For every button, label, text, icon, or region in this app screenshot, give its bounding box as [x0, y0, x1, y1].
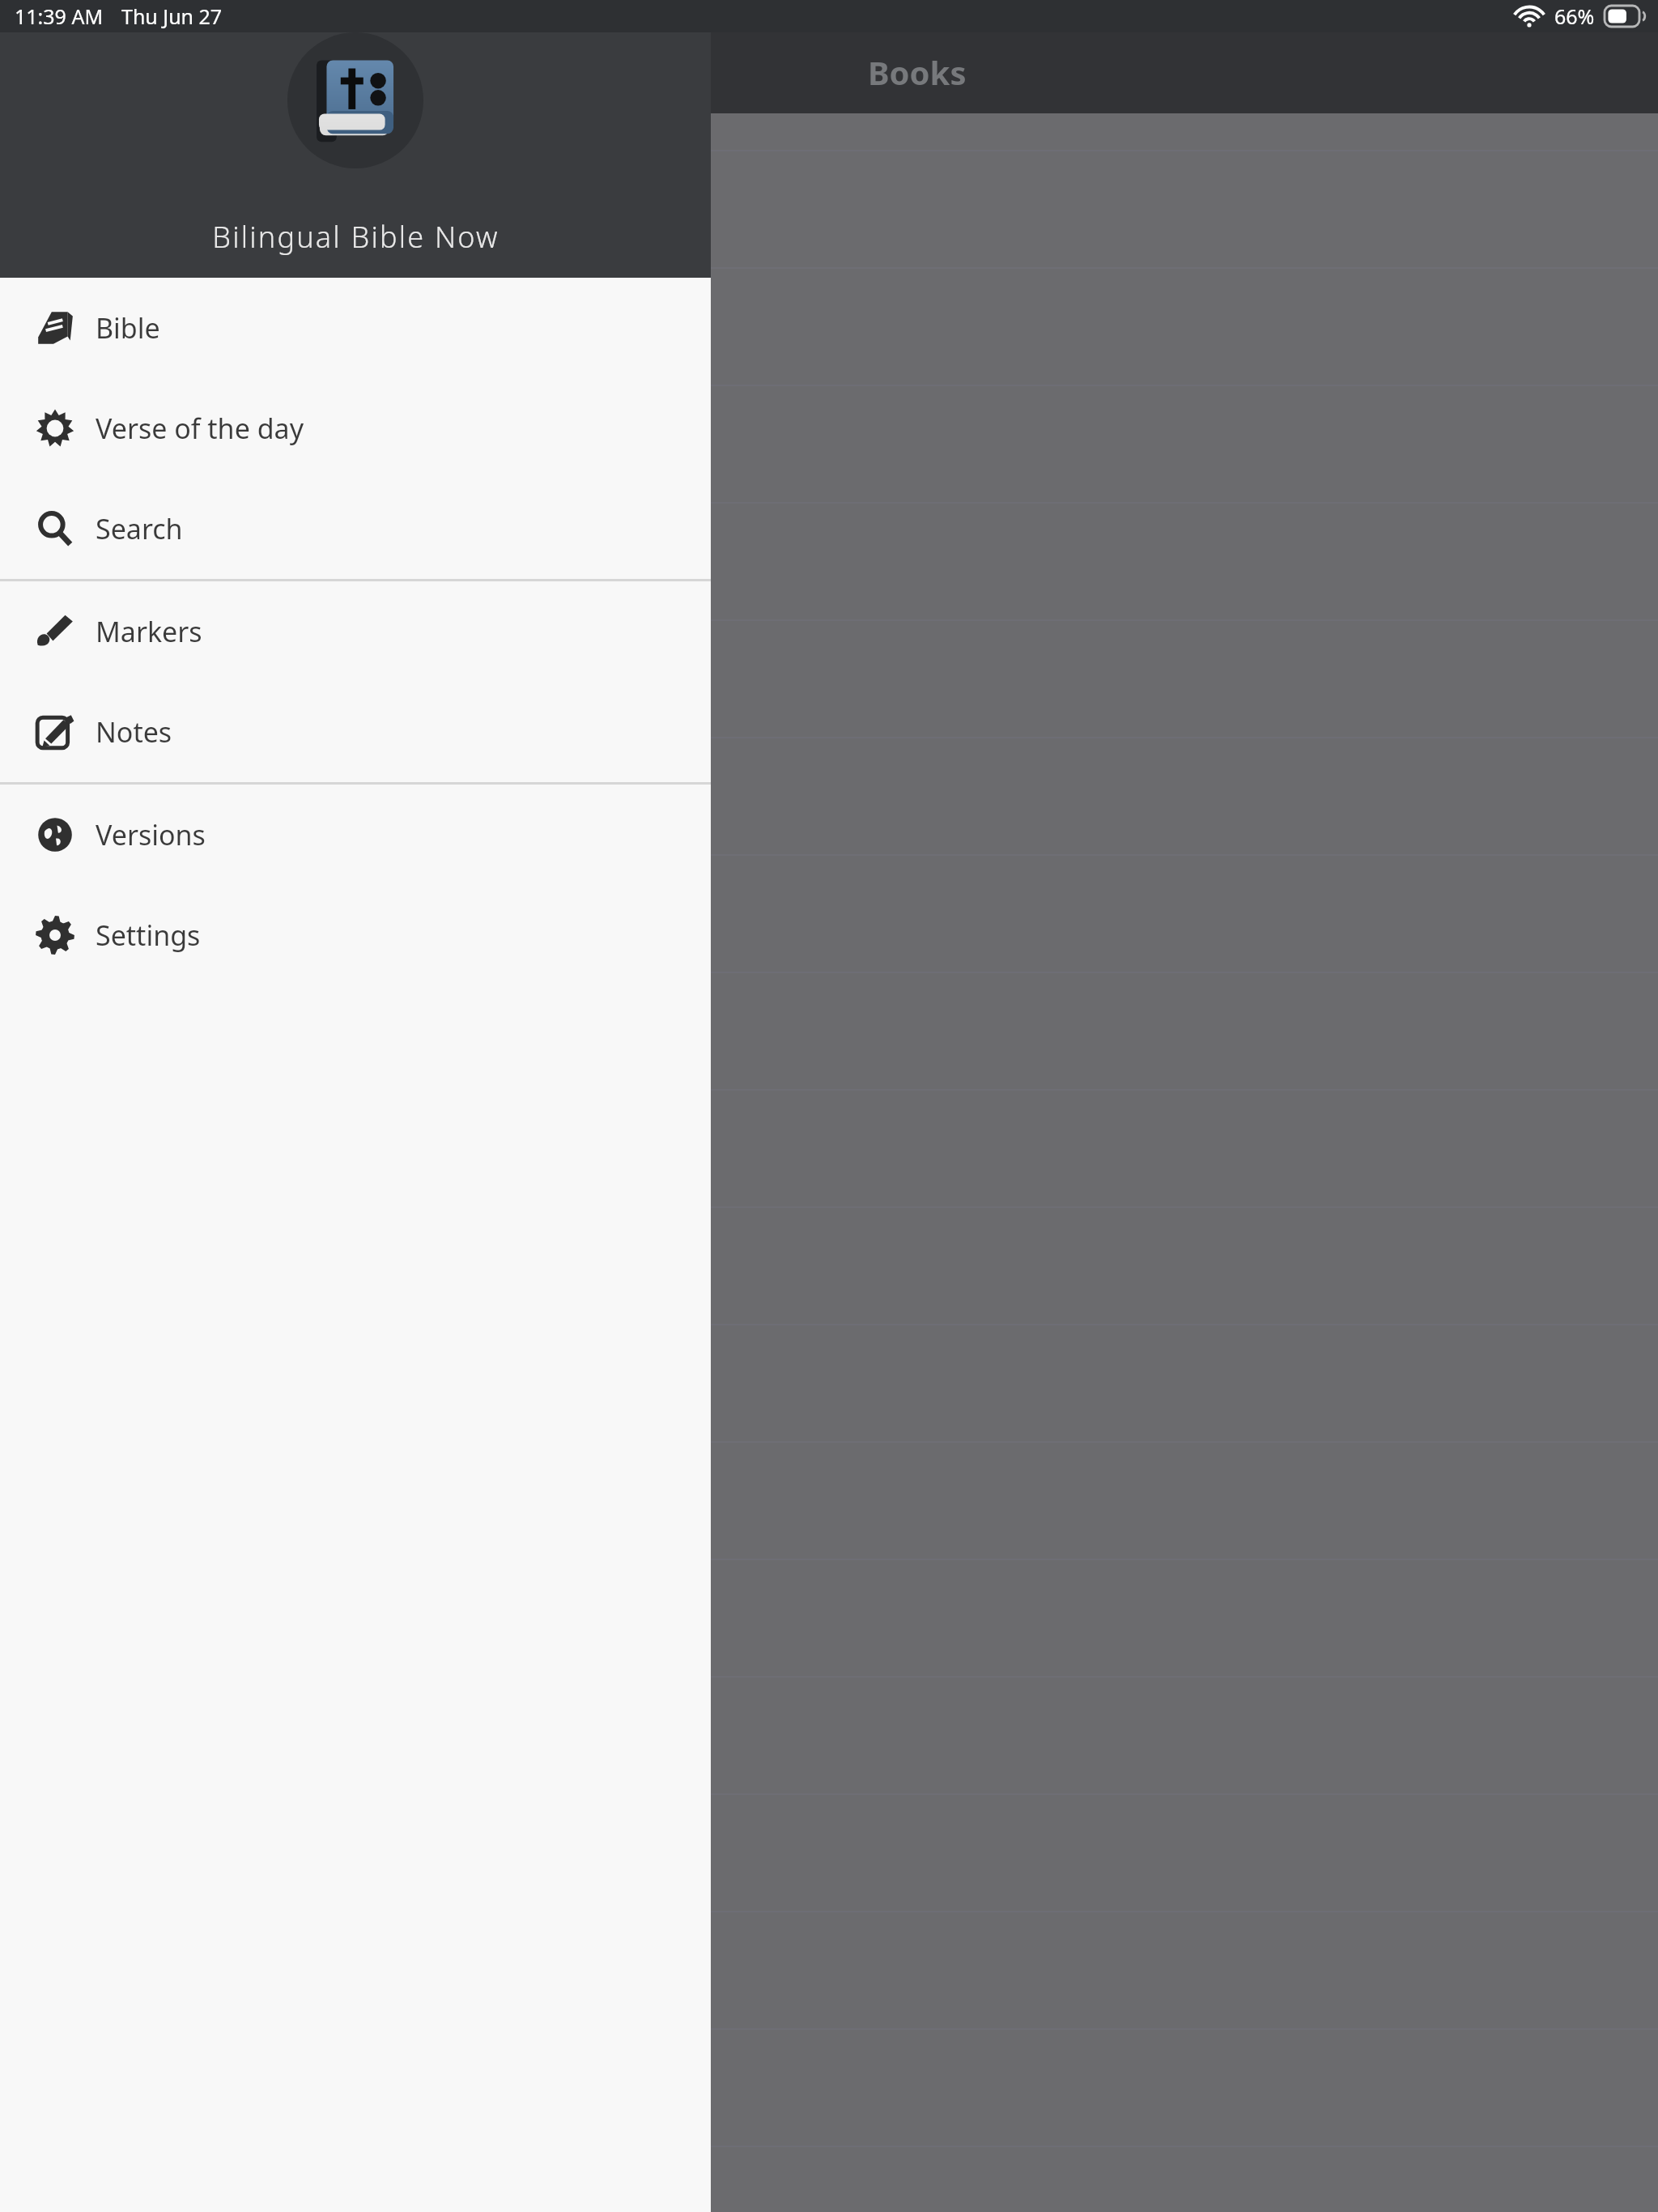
staticText: Versions: [96, 816, 206, 853]
button[interactable]: Verse of the day: [0, 378, 711, 479]
staticText: Notes: [96, 713, 172, 751]
button[interactable]: Versions: [0, 785, 711, 885]
staticText: Verse of the day: [96, 410, 304, 447]
staticText: Search: [96, 510, 183, 547]
staticText: Thu Jun 27: [121, 2, 223, 30]
staticText: Markers: [96, 613, 202, 650]
staticText: Bible: [96, 309, 160, 347]
button[interactable]: Bible: [0, 278, 711, 378]
staticText: 66%: [1554, 2, 1595, 30]
staticText: Books: [868, 50, 967, 94]
button[interactable]: Search: [0, 479, 711, 579]
staticText: Settings: [96, 917, 201, 954]
button[interactable]: Settings: [0, 885, 711, 985]
staticText: Bilingual Bible Now: [212, 217, 500, 257]
staticText: 11:39 AM: [15, 2, 104, 30]
button[interactable]: Markers: [0, 581, 711, 682]
button[interactable]: Notes: [0, 682, 711, 782]
